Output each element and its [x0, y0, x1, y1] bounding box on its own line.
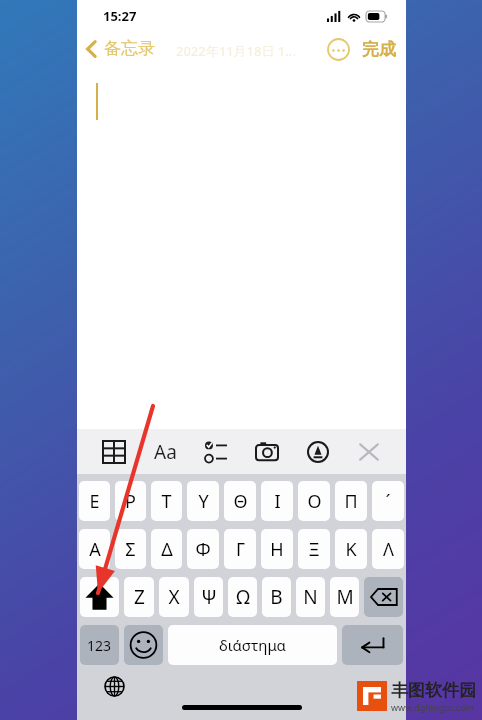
staticText: Ε: [89, 489, 100, 514]
button[interactable]: Ζ: [124, 577, 154, 617]
staticText: Χ: [168, 584, 180, 610]
button[interactable]: Close: [354, 437, 384, 467]
button[interactable]: Emoji: [124, 625, 163, 665]
button[interactable]: Θ: [224, 481, 256, 521]
staticText: διάστημα: [219, 635, 286, 655]
staticText: Φ: [195, 537, 211, 562]
staticText: Υ: [198, 489, 209, 514]
button[interactable]: Ψ: [194, 577, 223, 617]
button[interactable]: Ω: [228, 577, 257, 617]
button[interactable]: Λ: [372, 529, 404, 569]
button[interactable]: Ι: [261, 481, 293, 521]
staticText: www.dgfengtu.com: [391, 701, 475, 713]
staticText: Σ: [125, 537, 136, 562]
button[interactable]: Checklist: [201, 437, 231, 467]
staticText: Θ: [233, 489, 248, 514]
button[interactable]: Ο: [298, 481, 330, 521]
button[interactable]: Α: [79, 529, 110, 569]
button[interactable]: Aa: [150, 437, 180, 467]
button[interactable]: 123: [80, 625, 119, 665]
button[interactable]: Τ: [151, 481, 182, 521]
staticText: Β: [270, 584, 283, 610]
staticText: 15:27: [103, 7, 137, 25]
staticText: 123: [87, 636, 112, 655]
button[interactable]: Δ: [151, 529, 182, 569]
button[interactable]: Table: [99, 437, 129, 467]
button[interactable]: Γ: [224, 529, 256, 569]
staticText: Ρ: [125, 489, 136, 514]
button[interactable]: Υ: [187, 481, 219, 521]
button[interactable]: διάστημα: [168, 625, 337, 665]
staticText: Ζ: [134, 584, 145, 610]
button[interactable]: Κ: [335, 529, 367, 569]
button[interactable]: Μ: [330, 577, 359, 617]
staticText: Δ: [161, 537, 173, 562]
button[interactable]: Η: [261, 529, 293, 569]
other: Back: [85, 39, 98, 59]
staticText: Ω: [236, 584, 250, 610]
button[interactable]: Β: [262, 577, 291, 617]
staticText: Μ: [336, 584, 354, 610]
staticText: Τ: [161, 489, 172, 514]
staticText: ´: [385, 489, 391, 514]
button[interactable]: Change keyboard: [101, 673, 127, 699]
button[interactable]: 完成: [362, 39, 396, 60]
button[interactable]: Π: [335, 481, 367, 521]
button[interactable]: Χ: [159, 577, 189, 617]
staticText: 丰图软件园: [391, 680, 476, 701]
button[interactable]: Ξ: [298, 529, 330, 569]
staticText: Aa: [154, 439, 177, 465]
staticText: Λ: [383, 537, 394, 562]
staticText: Γ: [236, 537, 245, 562]
staticText: 备忘录: [104, 38, 155, 59]
button[interactable]: Markup: [303, 437, 333, 467]
button[interactable]: Shift: [80, 577, 119, 617]
staticText: 完成: [362, 39, 396, 60]
staticText: Ο: [307, 489, 322, 514]
staticText: Η: [270, 537, 284, 562]
button[interactable]: Σ: [115, 529, 146, 569]
staticText: Π: [344, 489, 358, 514]
staticText: Α: [89, 537, 101, 562]
button[interactable]: Return: [342, 625, 403, 665]
button[interactable]: Camera: [252, 437, 282, 467]
staticText: Ξ: [308, 537, 320, 562]
staticText: Κ: [345, 537, 357, 562]
button[interactable]: ´: [372, 481, 404, 521]
button[interactable]: Ε: [79, 481, 110, 521]
staticText: 2022年11月18日 1...: [176, 42, 296, 60]
button[interactable]: More options: [325, 36, 351, 62]
button[interactable]: Φ: [187, 529, 219, 569]
button[interactable]: Back: [85, 38, 155, 59]
button[interactable]: Backspace: [364, 577, 403, 617]
button[interactable]: Ν: [296, 577, 325, 617]
staticText: Ψ: [201, 584, 217, 610]
button[interactable]: Ρ: [115, 481, 146, 521]
staticText: Ν: [303, 584, 318, 610]
staticText: Ι: [274, 489, 281, 514]
